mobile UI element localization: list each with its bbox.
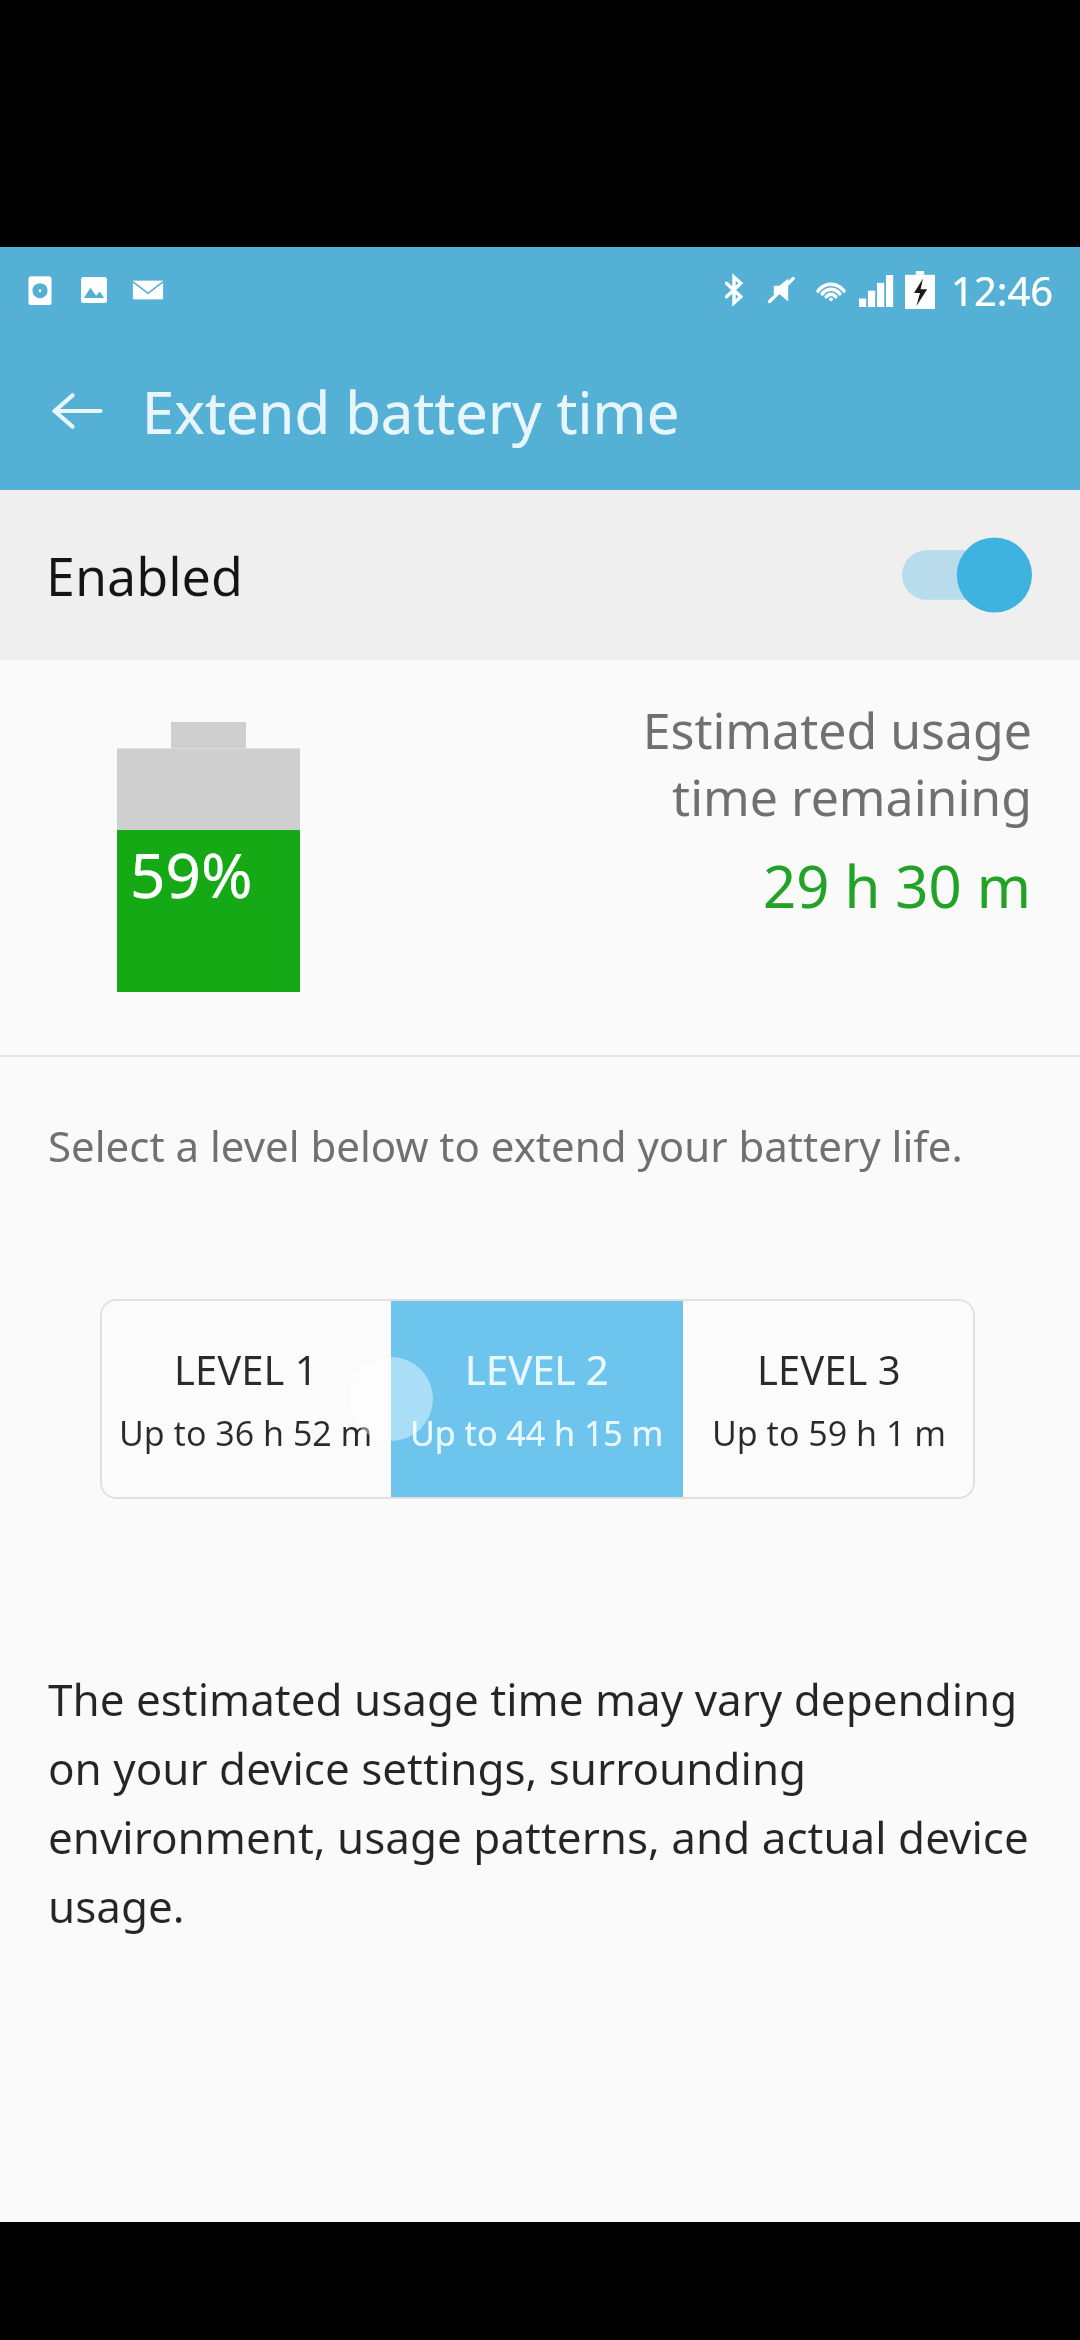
- staticText: Estimated usage time remaining: [642, 696, 1032, 830]
- staticText: Select a level below to extend your batt…: [48, 1117, 963, 1174]
- button[interactable]: Back: [34, 368, 120, 454]
- staticText: LEVEL 2: [465, 1342, 609, 1396]
- staticText: 12:46: [951, 263, 1054, 317]
- staticText: LEVEL 1: [174, 1342, 318, 1396]
- button[interactable]: Enabled: [0, 490, 1080, 660]
- staticText: The estimated usage time may vary depend…: [48, 1669, 1040, 1936]
- staticText: Up to 44 h 15 m: [410, 1410, 664, 1456]
- staticText: Up to 59 h 1 m: [712, 1410, 946, 1456]
- button[interactable]: LEVEL 3: [683, 1299, 975, 1499]
- button[interactable]: LEVEL 2: [391, 1299, 683, 1499]
- staticText: LEVEL 3: [757, 1342, 901, 1396]
- staticText: Up to 36 h 52 m: [119, 1410, 373, 1456]
- staticText: Enabled: [46, 540, 243, 611]
- staticText: Extend battery time: [142, 372, 680, 451]
- button[interactable]: LEVEL 1: [100, 1299, 391, 1499]
- staticText: 29 h 30 m: [763, 846, 1032, 925]
- staticText: 59%: [130, 832, 253, 916]
